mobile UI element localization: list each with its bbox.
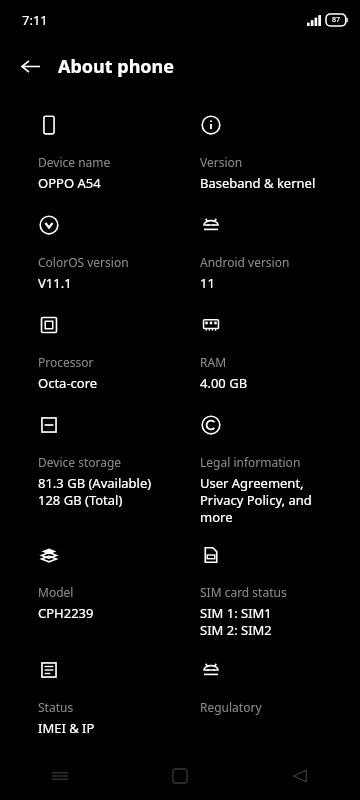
staticText: ColorOS version [38,254,129,270]
button[interactable]: Recents [0,752,120,800]
button[interactable]: Legal information [200,414,350,526]
button[interactable]: ColorOS version [38,214,190,292]
button[interactable]: Device storage [38,414,190,509]
staticText: Android version [200,254,290,270]
button[interactable]: Device name [38,114,190,192]
other: Status [38,659,60,681]
button[interactable]: Status [38,659,190,737]
staticText: Legal information [200,454,301,470]
staticText: User Agreement, Privacy Policy, and more [200,474,312,526]
button[interactable]: RAM [200,314,350,392]
staticText: CPH2239 [38,604,94,622]
staticText: 4.00 GB [200,374,248,392]
button[interactable]: Home [120,752,240,800]
other: RAM [200,314,222,336]
staticText: 87 [332,15,341,25]
staticText: About phone [58,54,175,79]
staticText: SIM 1: SIM1 SIM 2: SIM2 [200,604,272,639]
other: Regulatory [200,659,222,681]
other: Legal information [200,414,222,436]
button[interactable]: SIM card status [200,544,350,639]
staticText: Device name [38,154,111,170]
staticText: 7:11 [22,11,48,29]
staticText: OPPO A54 [38,174,101,192]
staticText: Baseband & kernel [200,174,316,192]
button[interactable]: Regulatory [200,659,350,715]
button[interactable]: Processor [38,314,190,392]
staticText: SIM card status [200,584,287,600]
other: Android version [200,214,222,236]
other: Processor [38,314,60,336]
button[interactable]: Back [14,50,46,82]
button[interactable]: Android version [200,214,350,292]
staticText: Version [200,154,243,170]
staticText: Processor [38,354,94,370]
other: Version [200,114,222,136]
staticText: 81.3 GB (Available) 128 GB (Total) [38,474,152,509]
other: Device storage [38,414,60,436]
staticText: Status [38,699,74,715]
other: ColorOS version [38,214,60,236]
staticText: IMEI & IP [38,719,95,737]
button[interactable]: Back [240,752,360,800]
other: Model [38,544,60,566]
button[interactable]: Model [38,544,190,622]
staticText: Octa-core [38,374,98,392]
staticText: V11.1 [38,274,72,292]
staticText: RAM [200,354,227,370]
other: SIM card status [200,544,222,566]
button[interactable]: Version [200,114,350,192]
staticText: 11 [200,274,215,292]
other: Device name [38,114,60,136]
staticText: Device storage [38,454,122,470]
staticText: Regulatory [200,699,262,715]
staticText: Model [38,584,74,600]
